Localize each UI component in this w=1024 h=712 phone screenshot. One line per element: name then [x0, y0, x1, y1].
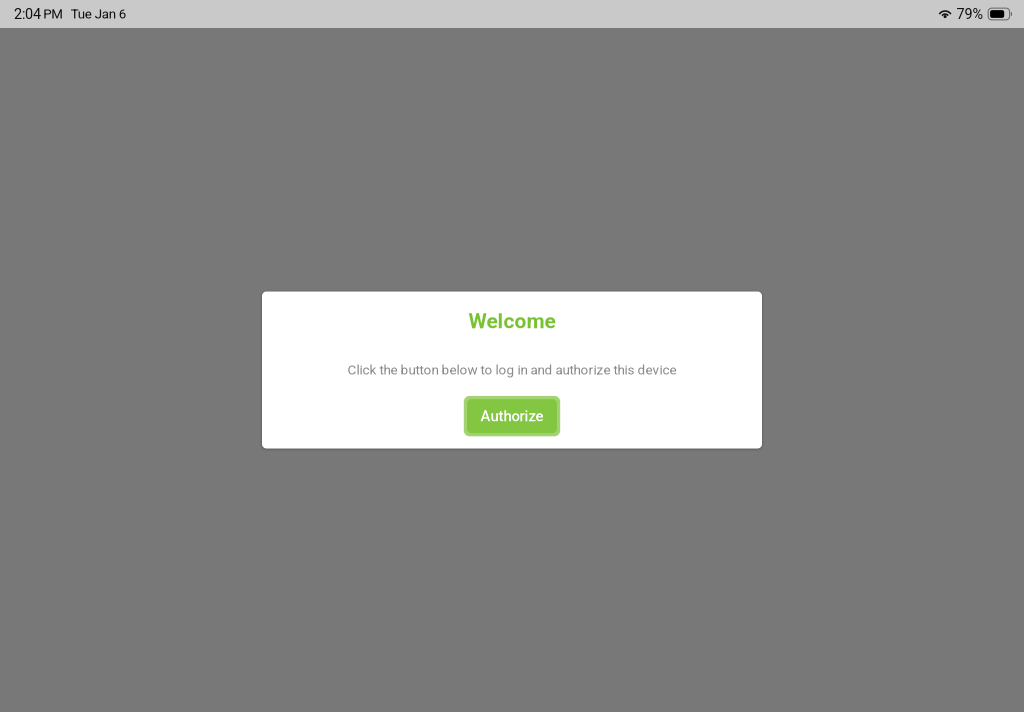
staticText: Welcome	[468, 309, 555, 333]
staticText: PM	[43, 6, 63, 22]
staticText: Click the button below to log in and aut…	[347, 362, 676, 378]
staticText: Authorize	[480, 407, 543, 425]
staticText: 79%	[956, 6, 983, 22]
button[interactable]: Authorize	[464, 396, 560, 436]
staticText: Tue Jan 6	[71, 6, 126, 22]
staticText: 2:04	[14, 6, 41, 22]
